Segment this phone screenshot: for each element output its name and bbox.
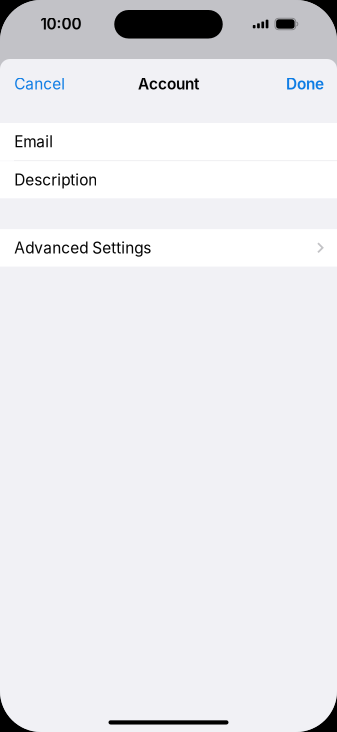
staticText: Cancel: [14, 75, 65, 93]
button[interactable]: Done: [274, 62, 337, 106]
button[interactable]: Email: [0, 123, 337, 160]
staticText: Done: [286, 75, 324, 93]
staticText: 10:00: [40, 15, 81, 33]
button[interactable]: Cancel: [0, 62, 77, 106]
staticText: Description: [14, 171, 97, 189]
button[interactable]: Description: [0, 161, 337, 199]
staticText: Email: [14, 132, 53, 151]
staticText: Advanced Settings: [14, 239, 151, 257]
staticText: Account: [138, 75, 199, 93]
button[interactable]: Advanced Settings: [0, 229, 337, 267]
